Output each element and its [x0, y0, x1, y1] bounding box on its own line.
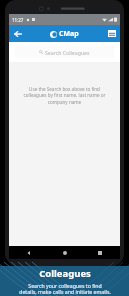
staticText: Use the Search box above to find colleag… [21, 86, 108, 106]
button[interactable]: Recents [94, 247, 106, 259]
staticText: Search your colleagues to find details, … [19, 282, 111, 296]
button[interactable]: Home [59, 247, 71, 259]
button[interactable]: Search Colleagues [15, 46, 114, 58]
button[interactable]: Menu [103, 25, 120, 42]
button[interactable]: Back [9, 25, 26, 42]
staticText: 11:27 [12, 17, 24, 23]
staticText: Search Colleagues [45, 49, 90, 56]
staticText: CMap [59, 29, 79, 39]
staticText: Colleagues [39, 267, 91, 280]
button[interactable]: Back [23, 247, 35, 259]
